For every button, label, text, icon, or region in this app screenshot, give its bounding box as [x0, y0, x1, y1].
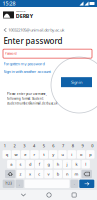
button[interactable]: u [58, 150, 67, 159]
staticText: Forgotten my password [3, 61, 44, 66]
button[interactable]: o [77, 150, 85, 159]
button[interactable]: r [30, 150, 39, 159]
staticText: Sign in with another account [3, 69, 50, 74]
button[interactable]: Backspace [81, 170, 92, 178]
button[interactable]: m [72, 170, 81, 178]
button[interactable]: Shift [5, 170, 15, 178]
staticText: 9 [81, 143, 83, 148]
button[interactable]: h [54, 160, 62, 168]
staticText: c [38, 171, 40, 177]
staticText: UNIVERSITY OF [16, 10, 26, 12]
staticText: b [57, 171, 59, 177]
staticText: q [6, 152, 8, 157]
button[interactable]: 2 [10, 143, 19, 149]
staticText: w [14, 152, 17, 157]
button[interactable]: 5 [39, 143, 48, 149]
staticText: d [29, 161, 31, 167]
staticText: studentnumber@unimail.derby.ac.uk [7, 102, 57, 105]
button[interactable]: 7 [58, 143, 68, 149]
button[interactable]: Sign in [61, 77, 92, 87]
button[interactable]: 1 [0, 143, 10, 149]
button[interactable]: Sign in with another account [3, 69, 50, 74]
button[interactable]: y [49, 150, 57, 159]
button[interactable]: x [26, 170, 34, 178]
staticText: p [89, 152, 91, 157]
staticText: a [10, 161, 12, 167]
staticText: 15:28 [2, 0, 15, 7]
staticText: DERBY [16, 12, 33, 19]
button[interactable]: 4 [29, 143, 39, 149]
button[interactable]: b [54, 170, 62, 178]
button[interactable]: . [70, 180, 78, 188]
staticText: l [85, 161, 86, 167]
staticText: x [29, 171, 31, 177]
staticText: z [20, 171, 22, 177]
staticText: Sign in [71, 79, 82, 85]
staticText: . [74, 182, 75, 185]
button[interactable]: p [86, 150, 94, 159]
staticText: 100322105@unimail.derby.ac.uk [8, 27, 64, 33]
staticText: following format: Student: [7, 97, 44, 100]
button[interactable]: 3 [19, 143, 29, 149]
button[interactable]: a [7, 160, 15, 168]
staticText: m [74, 171, 78, 177]
staticText: e [24, 152, 26, 157]
staticText: Password [5, 52, 17, 55]
staticText: ?123 [5, 182, 12, 185]
button[interactable]: q [2, 150, 11, 159]
button[interactable]: d [26, 160, 34, 168]
staticText: o [80, 152, 82, 157]
button[interactable]: w [12, 150, 20, 159]
button[interactable]: n [63, 170, 71, 178]
staticText: r [33, 152, 35, 157]
staticText: , [19, 182, 20, 185]
staticText: y [52, 152, 54, 157]
staticText: 7 [62, 143, 64, 148]
staticText: Enter password [3, 35, 62, 46]
button[interactable]: v [44, 170, 53, 178]
staticText: g [47, 161, 49, 167]
button[interactable]: 100322105@unimail.derby.ac.uk [0, 27, 97, 33]
staticText: i [71, 152, 72, 157]
staticText: 0 [91, 143, 93, 148]
staticText: 1 [4, 143, 6, 148]
button[interactable]: z [16, 170, 25, 178]
button[interactable]: 0 [87, 143, 97, 149]
button[interactable]: Home [47, 193, 51, 197]
button[interactable]: ?123 [3, 180, 15, 188]
staticText: 4 [33, 143, 35, 148]
button[interactable]: i [67, 150, 76, 159]
staticText: v [47, 171, 49, 177]
staticText: j [67, 161, 68, 167]
staticText: s [20, 161, 22, 167]
staticText: k [75, 161, 77, 167]
button[interactable]: Back [21, 193, 26, 197]
button[interactable]: Recent apps [72, 193, 76, 197]
button[interactable]: t [40, 150, 48, 159]
staticText: 3 [23, 143, 25, 148]
button[interactable]: j [63, 160, 71, 168]
staticText: f [39, 161, 40, 167]
button[interactable]: l [81, 160, 90, 168]
button[interactable]: 6 [48, 143, 58, 149]
button[interactable]: e [21, 150, 29, 159]
staticText: 6 [52, 143, 54, 148]
button[interactable]: g [44, 160, 53, 168]
staticText: h [57, 161, 59, 167]
staticText: 8 [72, 143, 74, 148]
staticText: 5 [43, 143, 45, 148]
button[interactable]: Enter [79, 180, 94, 188]
button[interactable]: 8 [68, 143, 78, 149]
staticText: t [43, 152, 44, 157]
button[interactable]: Forgotten my password [3, 61, 44, 66]
staticText: u [61, 152, 63, 157]
button[interactable]: s [16, 160, 25, 168]
button[interactable]: f [35, 160, 43, 168]
button[interactable]: c [35, 170, 43, 178]
button[interactable]: 9 [78, 143, 87, 149]
staticText: Please enter your username, [7, 92, 47, 96]
button[interactable]: , [16, 180, 24, 188]
button[interactable]: k [72, 160, 81, 168]
